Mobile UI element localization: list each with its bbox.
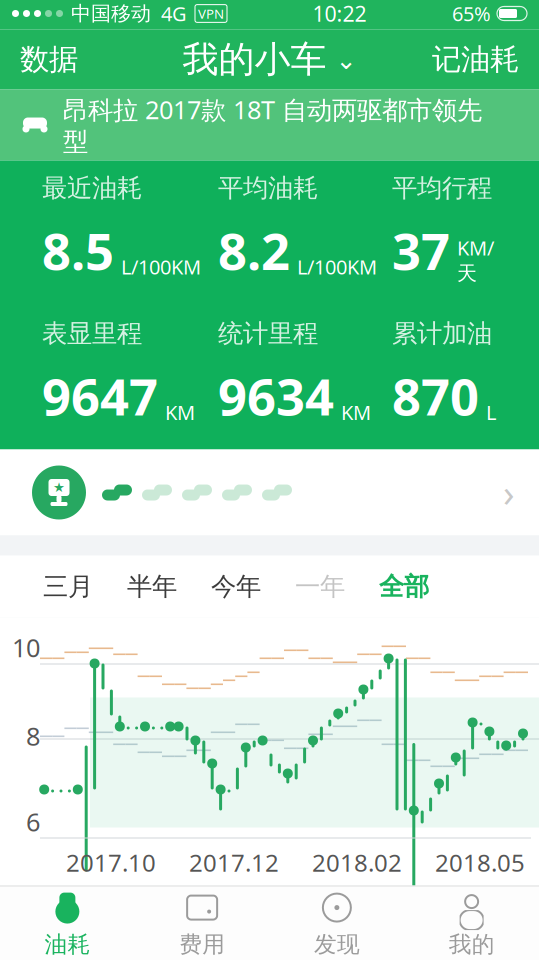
staticText: 今年 [211,571,261,602]
staticText: 数据 [20,41,78,77]
staticText: 累计加油 [392,318,492,349]
staticText: 半年 [127,571,177,602]
staticText: 8.5 [42,217,114,284]
staticText: ⌄ [335,46,356,74]
staticText: 表显里程 [42,318,142,349]
staticText: 870 [392,362,479,429]
staticText: 8 [26,719,40,753]
staticText: 8.2 [218,217,290,284]
staticText: 统计里程 [218,318,318,349]
staticText: ★ [53,480,65,495]
staticText: 9647 [42,362,158,429]
staticText: 2017.12 [189,846,279,878]
staticText: 2017.10 [66,846,156,878]
staticText: 65% [452,0,491,27]
staticText: 10 [12,630,40,664]
button[interactable]: 我的 [404,886,539,960]
staticText: 油耗 [44,931,90,958]
staticText: 中国移动 [71,1,151,26]
staticText: L [486,399,496,425]
staticText: 2018.05 [435,846,525,878]
staticText: 37 [392,217,450,284]
staticText: L/100KM [297,253,377,280]
button[interactable]: 三月 [26,556,110,617]
staticText: 最近油耗 [42,173,142,204]
staticText: 发现 [314,931,360,958]
staticText: 昂科拉 2017款 18T 自动两驱都市领先型 [63,93,482,157]
staticText: 平均行程 [392,173,492,204]
button[interactable]: 数据 [0,27,98,91]
staticText: 记油耗 [432,41,519,77]
staticText: KM/天 [457,234,494,285]
button[interactable]: 昂科拉 2017款 18T 自动两驱都市领先型 [0,89,539,160]
staticText: 2018.02 [312,846,402,878]
staticText: 全部 [379,571,429,602]
staticText: 一年 [295,571,345,602]
staticText: 平均油耗 [218,173,318,204]
staticText: 我的小车 [182,37,326,82]
button[interactable]: 发现 [269,886,404,960]
button[interactable]: ★ [0,449,539,535]
staticText: 我的 [449,931,495,958]
button[interactable]: 油耗 [0,886,135,960]
button[interactable]: 今年 [194,556,278,617]
staticText: KM [341,399,371,425]
staticText: 6 [26,805,40,838]
staticText: 9634 [218,362,334,429]
staticText: 10:22 [312,0,366,28]
staticText: L/100KM [121,253,201,280]
staticText: 费用 [179,931,225,958]
button[interactable]: 半年 [110,556,194,617]
staticText: VPN [198,5,224,22]
button[interactable]: 记油耗 [412,27,539,91]
button[interactable]: 全部 [362,556,446,617]
staticText: 4G [161,0,187,27]
button[interactable]: 一年 [278,556,362,617]
staticText: › [503,468,515,517]
button[interactable]: 我的小车 [168,29,370,90]
staticText: 三月 [43,571,93,602]
staticText: KM [165,399,195,425]
button[interactable]: 费用 [135,886,270,960]
